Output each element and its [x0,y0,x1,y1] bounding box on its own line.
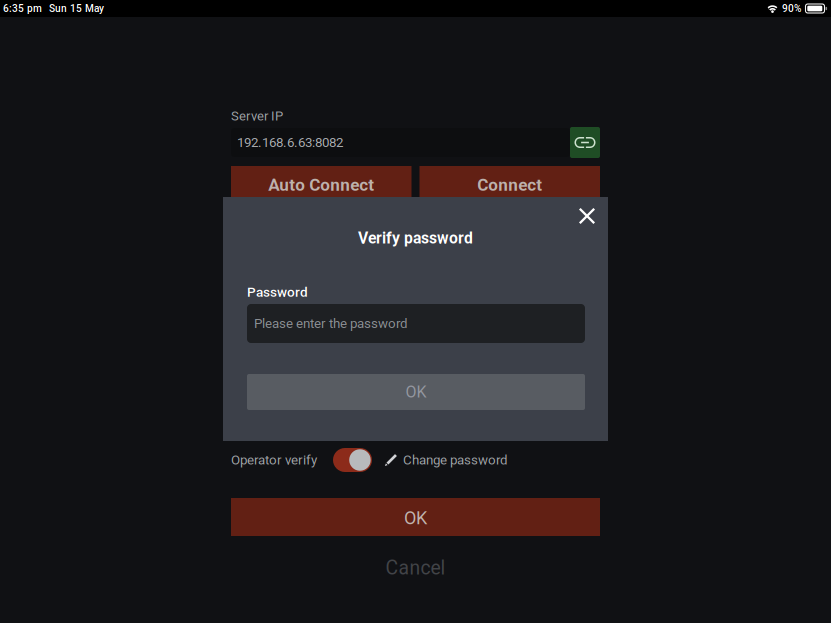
staticText: Cancel [385,557,445,579]
staticText: Connect [477,175,542,195]
staticText: 90% [782,3,801,14]
staticText: Verify password [358,229,473,247]
button[interactable]: Cancel [231,550,600,586]
staticText: Auto Connect [268,175,374,195]
staticText: Sun 15 May [49,3,104,14]
button[interactable]: Auto Connect [231,166,411,202]
staticText: Change password [403,452,508,468]
button[interactable]: Close [572,201,602,231]
button[interactable]: OK [231,498,600,536]
staticText: OK [404,507,427,529]
staticText: Operator verify [231,452,317,468]
button[interactable]: Operator verify [333,448,372,472]
staticText: Server IP [231,108,283,124]
staticText: 6:35 pm [3,3,42,14]
button[interactable]: Connect to server [570,127,600,158]
staticText: OK [405,383,426,401]
button[interactable]: Change password [384,448,508,472]
staticText: 192.168.6.63:8082 [237,135,343,150]
button[interactable]: Connect [419,166,600,202]
button[interactable]: OK [247,374,585,410]
staticText: Please enter the password [254,316,408,331]
staticText: Password [247,284,308,300]
